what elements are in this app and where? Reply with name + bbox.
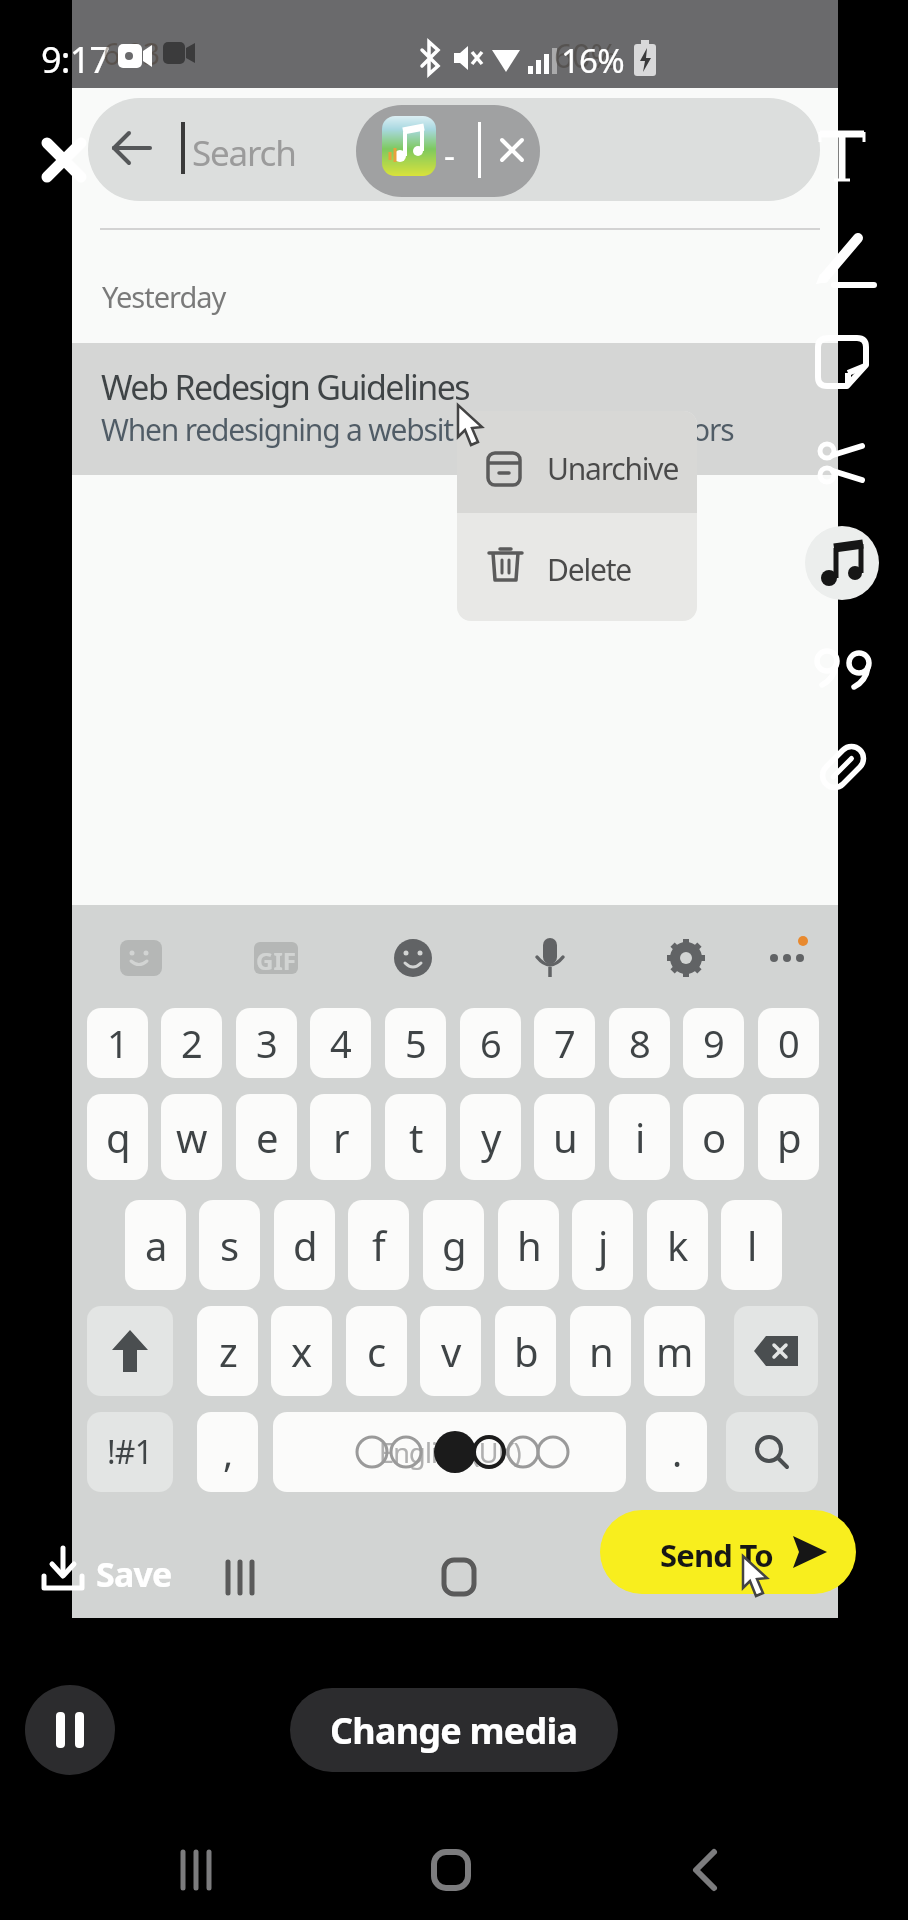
button[interactable]: z — [197, 1306, 258, 1396]
button[interactable]: l — [721, 1200, 782, 1290]
button[interactable] — [726, 1412, 818, 1492]
staticText: f — [372, 1218, 385, 1272]
button[interactable]: v — [420, 1306, 481, 1396]
button[interactable]: 9 — [683, 1008, 744, 1078]
staticText: n — [589, 1324, 613, 1378]
button[interactable]: 1 — [87, 1008, 148, 1078]
staticText: 4 — [330, 1017, 351, 1069]
button[interactable]: x — [271, 1306, 332, 1396]
button[interactable] — [432, 1850, 470, 1890]
button[interactable] — [805, 526, 879, 600]
button[interactable]: !#1 — [87, 1412, 173, 1492]
button[interactable]: 2 — [161, 1008, 222, 1078]
button[interactable]: j — [572, 1200, 633, 1290]
button[interactable]: e — [236, 1094, 297, 1180]
staticText: Delete — [547, 549, 632, 590]
staticText: l — [747, 1218, 757, 1272]
button[interactable] — [815, 335, 869, 389]
staticText: g — [442, 1218, 466, 1272]
button[interactable]: 5 — [385, 1008, 446, 1078]
button[interactable] — [692, 1850, 718, 1890]
button[interactable]: 8 — [609, 1008, 670, 1078]
staticText: 9:17 — [41, 35, 110, 84]
button[interactable] — [356, 105, 540, 197]
button[interactable]: c — [346, 1306, 407, 1396]
button[interactable]: , — [197, 1412, 258, 1492]
button[interactable]: t — [385, 1094, 446, 1180]
button[interactable]: English (UK) — [273, 1412, 626, 1492]
button[interactable] — [457, 411, 697, 513]
staticText: e — [256, 1110, 278, 1164]
button[interactable]: i — [609, 1094, 670, 1180]
button[interactable]: d — [274, 1200, 335, 1290]
staticText: Yesterday — [102, 277, 226, 316]
button[interactable]: p — [758, 1094, 819, 1180]
button[interactable]: g — [423, 1200, 484, 1290]
staticText: - — [444, 132, 455, 178]
button[interactable] — [457, 513, 697, 621]
button[interactable] — [814, 232, 876, 288]
staticText: x — [291, 1324, 312, 1378]
button[interactable]: 6 — [460, 1008, 521, 1078]
button[interactable] — [87, 1306, 173, 1396]
button[interactable]: b — [495, 1306, 556, 1396]
staticText: 6 — [480, 1017, 501, 1069]
staticText: v — [441, 1324, 461, 1378]
staticText: 1 — [107, 1017, 128, 1069]
button[interactable]: f — [348, 1200, 409, 1290]
staticText: , — [223, 1426, 233, 1478]
button[interactable]: m — [644, 1306, 705, 1396]
staticText: 60% — [554, 33, 617, 78]
staticText: r — [333, 1110, 349, 1164]
button[interactable] — [180, 1850, 216, 1890]
staticText: Search — [192, 129, 296, 177]
button[interactable] — [818, 130, 866, 182]
button[interactable]: h — [498, 1200, 559, 1290]
button[interactable]: w — [161, 1094, 222, 1180]
button[interactable]: y — [460, 1094, 521, 1180]
button[interactable]: 3 — [236, 1008, 297, 1078]
button[interactable] — [813, 737, 873, 797]
button[interactable]: u — [534, 1094, 595, 1180]
button[interactable]: s — [199, 1200, 260, 1290]
button[interactable]: 7 — [534, 1008, 595, 1078]
staticText: q — [106, 1110, 130, 1164]
button[interactable] — [88, 98, 820, 201]
staticText: Send To — [660, 1534, 773, 1576]
staticText: c — [367, 1324, 386, 1378]
button[interactable]: 4 — [310, 1008, 371, 1078]
button[interactable] — [25, 1685, 115, 1775]
staticText: . — [672, 1426, 682, 1478]
button[interactable]: 0 — [758, 1008, 819, 1078]
button[interactable] — [600, 1510, 856, 1594]
button[interactable] — [734, 1306, 818, 1396]
button[interactable]: . — [646, 1412, 707, 1492]
staticText: i — [635, 1110, 645, 1164]
button[interactable] — [44, 140, 84, 180]
staticText: a — [145, 1218, 167, 1272]
staticText: 3 — [256, 1017, 277, 1069]
staticText: 0 — [778, 1017, 799, 1069]
staticText: 8 — [629, 1017, 650, 1069]
staticText: s — [220, 1218, 239, 1272]
button[interactable]: Change media — [290, 1688, 618, 1772]
staticText: ors — [692, 409, 734, 450]
button[interactable]: o — [683, 1094, 744, 1180]
button[interactable] — [816, 438, 870, 488]
staticText: z — [219, 1324, 237, 1378]
button[interactable]: q — [87, 1094, 148, 1180]
staticText: k — [667, 1218, 688, 1272]
button[interactable] — [72, 343, 838, 475]
staticText: Change media — [330, 1706, 578, 1755]
button[interactable]: n — [570, 1306, 631, 1396]
staticText: b — [514, 1324, 538, 1378]
button[interactable] — [42, 1546, 84, 1592]
button[interactable]: a — [125, 1200, 186, 1290]
button[interactable]: r — [310, 1094, 371, 1180]
staticText: p — [777, 1110, 801, 1164]
staticText: d — [293, 1218, 317, 1272]
button[interactable]: k — [647, 1200, 708, 1290]
staticText: 2 — [181, 1017, 202, 1069]
staticText: o — [702, 1110, 726, 1164]
button[interactable] — [814, 645, 876, 691]
